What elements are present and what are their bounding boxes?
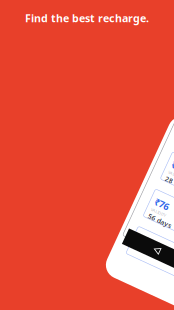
staticText: Find the best recharge.	[25, 11, 149, 25]
